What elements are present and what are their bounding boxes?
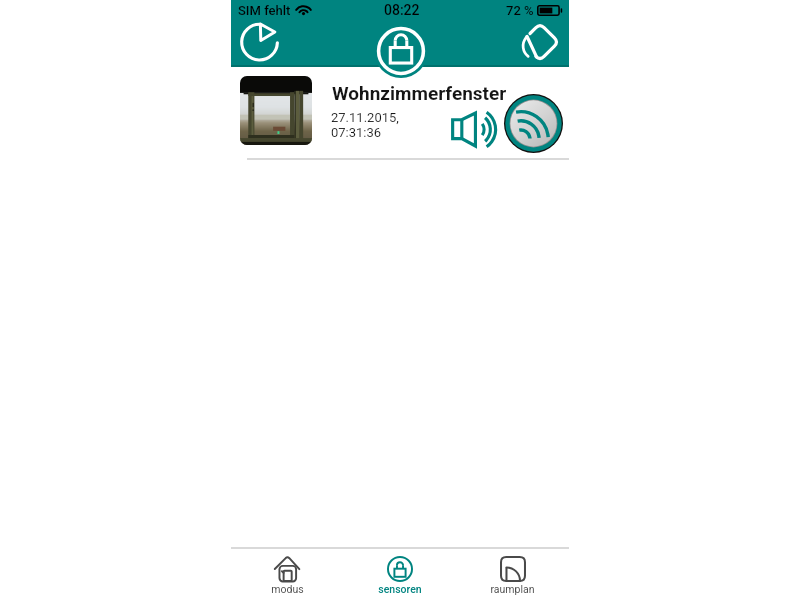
button[interactable]: raumplan <box>456 549 569 595</box>
staticText: SIM fehlt <box>238 3 291 18</box>
button[interactable]: Raumplan <box>518 20 562 64</box>
button[interactable]: Ton <box>447 110 501 148</box>
button[interactable]: sensoren <box>343 549 456 595</box>
staticText: raumplan <box>490 583 535 595</box>
staticText: 27.11.2015, 07:31:36 <box>331 110 399 140</box>
staticText: modus <box>271 583 304 595</box>
staticText: 08:22 <box>384 2 420 18</box>
button[interactable]: Wohnzimmerfenster <box>231 67 569 159</box>
button[interactable]: modus <box>231 549 343 595</box>
button[interactable]: Sperren <box>374 24 428 78</box>
staticText: sensoren <box>378 583 422 595</box>
button[interactable]: Aktualisieren <box>240 23 282 65</box>
button[interactable]: Signal <box>504 94 563 153</box>
staticText: Wohnzimmerfenster <box>332 82 507 104</box>
staticText: 72 % <box>506 3 534 18</box>
